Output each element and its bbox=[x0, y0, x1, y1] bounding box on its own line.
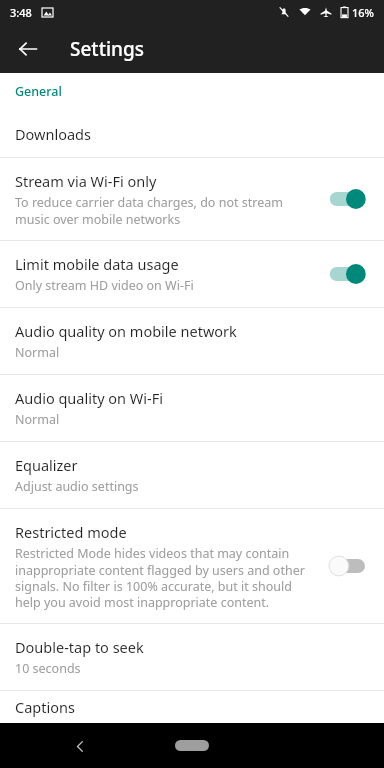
staticText: Audio quality on Wi-Fi bbox=[15, 388, 163, 408]
staticText: Settings bbox=[70, 36, 144, 62]
staticText: 3:48 bbox=[10, 5, 32, 20]
button[interactable]: Stream via Wi-Fi only bbox=[0, 158, 384, 240]
button[interactable]: Captions bbox=[0, 691, 384, 723]
button[interactable]: Audio quality on mobile network bbox=[0, 308, 384, 374]
staticText: To reduce carrier data charges, do not s… bbox=[15, 194, 318, 227]
button[interactable]: Off bbox=[328, 553, 372, 579]
button[interactable]: On bbox=[328, 186, 372, 212]
staticText: Equalizer bbox=[15, 455, 78, 475]
button[interactable]: Home bbox=[175, 740, 209, 751]
staticText: 10 seconds bbox=[15, 660, 81, 677]
button[interactable]: Downloads bbox=[0, 110, 384, 157]
staticText: Normal bbox=[15, 411, 60, 428]
staticText: Only stream HD video on Wi-Fi bbox=[15, 277, 194, 294]
staticText: Downloads bbox=[15, 124, 91, 144]
staticText: Adjust audio settings bbox=[15, 478, 139, 495]
button[interactable]: Restricted mode bbox=[0, 509, 384, 623]
staticText: 16% bbox=[352, 5, 374, 20]
staticText: Captions bbox=[15, 697, 75, 717]
button[interactable]: On bbox=[328, 261, 372, 287]
button[interactable]: Limit mobile data usage bbox=[0, 241, 384, 307]
staticText: General bbox=[15, 83, 62, 100]
button[interactable]: Back bbox=[8, 29, 48, 69]
staticText: Stream via Wi-Fi only bbox=[15, 171, 157, 191]
staticText: Restricted mode bbox=[15, 522, 127, 542]
staticText: Restricted Mode hides videos that may co… bbox=[15, 545, 318, 610]
staticText: Normal bbox=[15, 344, 60, 361]
button[interactable]: Equalizer bbox=[0, 442, 384, 508]
staticText: Limit mobile data usage bbox=[15, 254, 179, 274]
staticText: Audio quality on mobile network bbox=[15, 321, 237, 341]
button[interactable]: Double-tap to seek bbox=[0, 624, 384, 690]
staticText: Double-tap to seek bbox=[15, 637, 144, 657]
button[interactable]: Back bbox=[62, 728, 98, 764]
button[interactable]: Audio quality on Wi-Fi bbox=[0, 375, 384, 441]
